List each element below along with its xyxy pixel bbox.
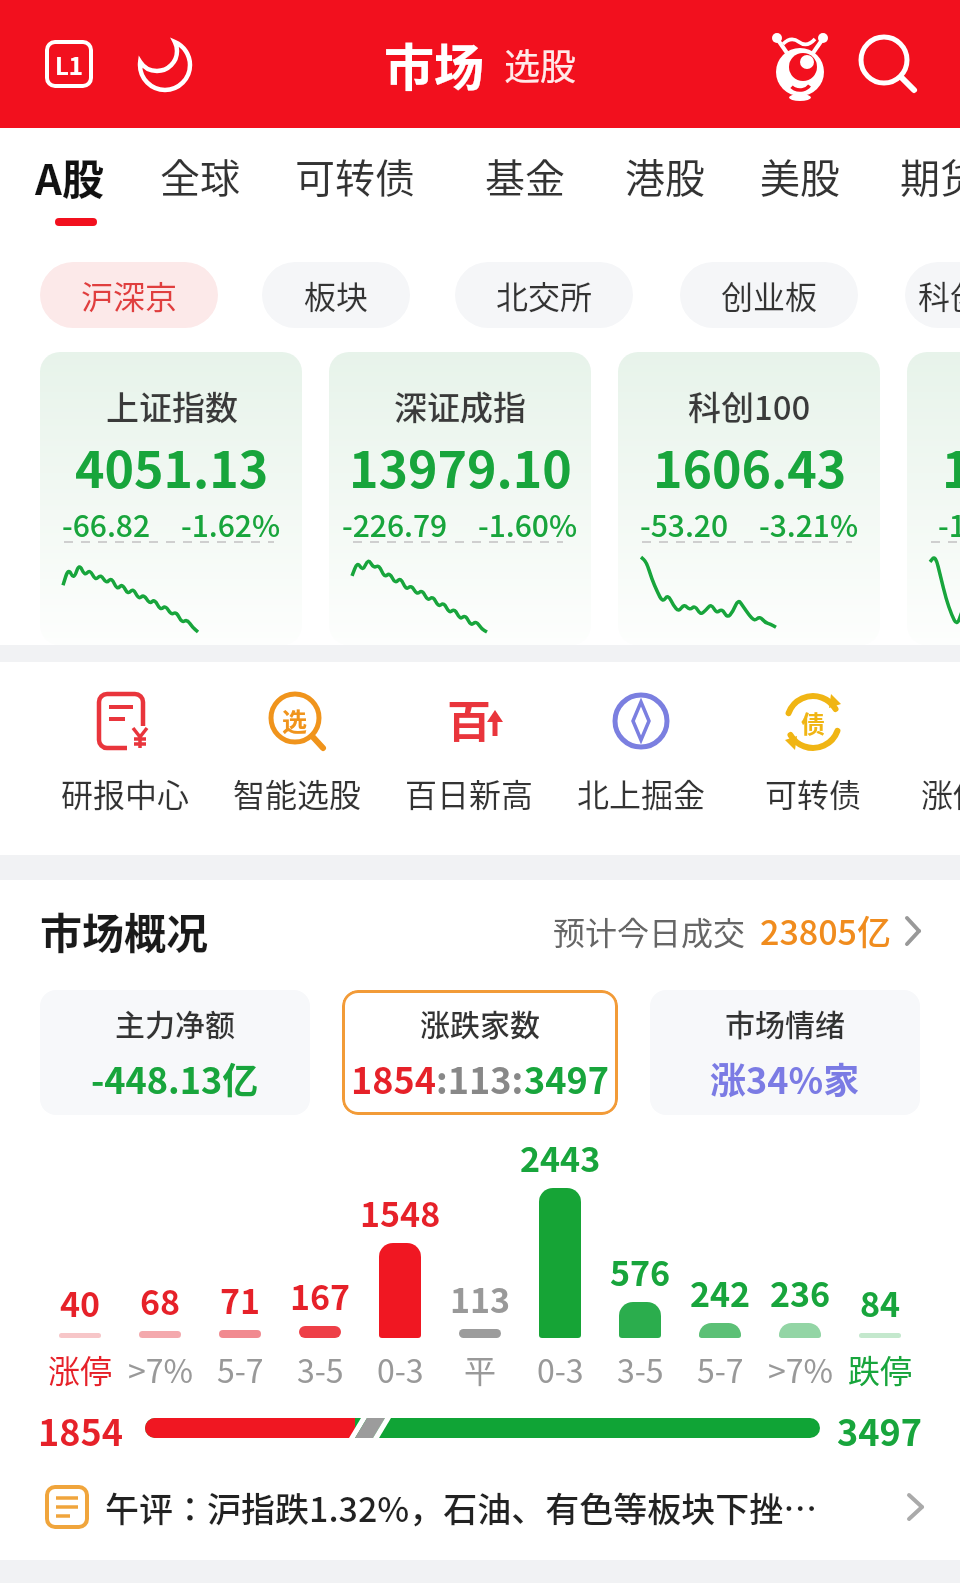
staticText: 上证指数: [106, 382, 238, 430]
staticText: 涨34%家: [710, 1052, 860, 1104]
staticText: 板块: [304, 272, 369, 318]
button[interactable]: 选: [211, 662, 383, 855]
staticText: 科创板: [918, 272, 960, 318]
button[interactable]: 午评：沪指跌1.32%，石油、有色等板块下挫…: [45, 1462, 930, 1552]
staticText: -3.21%: [759, 502, 859, 545]
button[interactable]: 沪深京: [40, 262, 218, 328]
staticText: 深证成指: [394, 382, 526, 430]
staticText: 债: [801, 705, 825, 740]
staticText: 5-7: [217, 1346, 264, 1392]
button[interactable]: [765, 28, 835, 98]
button[interactable]: 基金: [485, 128, 565, 224]
staticText: >7%: [128, 1346, 193, 1392]
button[interactable]: [138, 36, 198, 96]
button[interactable]: A股: [35, 128, 104, 224]
button[interactable]: 涨停雷达: [899, 662, 960, 855]
staticText: 68: [140, 1276, 181, 1325]
staticText: 市场概况: [40, 900, 209, 961]
staticText: 预计今日成交: [553, 908, 746, 954]
staticText: 84: [860, 1278, 901, 1327]
staticText: 午评：沪指跌1.32%，石油、有色等板块下挫…: [105, 1483, 904, 1532]
button[interactable]: 市场: [384, 28, 484, 100]
staticText: 市场情绪: [725, 1001, 845, 1044]
staticText: 40: [60, 1278, 101, 1327]
staticText: 港股: [625, 147, 705, 205]
staticText: 0-3: [537, 1346, 584, 1392]
staticText: 可转债: [295, 147, 415, 205]
button[interactable]: 研报中心: [39, 662, 211, 855]
staticText: 北交所: [496, 272, 593, 318]
button[interactable]: 北上掘金: [555, 662, 727, 855]
staticText: 跌停: [848, 1346, 913, 1392]
staticText: 科创100: [688, 382, 811, 430]
staticText: 236: [770, 1268, 831, 1317]
staticText: 平: [464, 1346, 497, 1392]
staticText: 北上掘金: [577, 770, 706, 816]
button[interactable]: 市场情绪: [650, 990, 920, 1115]
button[interactable]: 创业板: [680, 262, 858, 328]
staticText: 基金: [485, 147, 565, 205]
staticText: 1854: [38, 1404, 123, 1452]
button[interactable]: [858, 32, 922, 96]
staticText: 3497: [524, 1052, 609, 1104]
staticText: 1606.43: [653, 430, 847, 502]
staticText: 可转债: [765, 770, 862, 816]
staticText: 智能选股: [233, 770, 362, 816]
staticText: -448.13亿: [91, 1052, 259, 1104]
staticText: 13979.10: [349, 430, 572, 502]
button[interactable]: 全球: [160, 128, 240, 224]
staticText: 主力净额: [115, 1001, 235, 1044]
staticText: 百日新高: [405, 770, 534, 816]
button[interactable]: 深证成指: [329, 352, 591, 645]
staticText: 涨跌家数: [420, 1001, 540, 1044]
staticText: -66.82: [62, 502, 151, 545]
staticText: 4051.13: [75, 430, 269, 502]
button[interactable]: 债: [727, 662, 899, 855]
staticText: 242: [690, 1268, 751, 1317]
staticText: 期货: [900, 147, 960, 205]
staticText: -226.79: [342, 502, 448, 545]
button[interactable]: 选股: [504, 38, 577, 90]
staticText: 5-7: [697, 1346, 744, 1392]
button[interactable]: 涨跌家数: [342, 990, 618, 1115]
button[interactable]: 科创板: [905, 262, 960, 328]
staticText: 美股: [760, 147, 840, 205]
staticText: 全球: [160, 147, 240, 205]
button[interactable]: 可转债: [295, 128, 415, 224]
staticText: L1: [55, 47, 84, 82]
staticText: 涨停: [48, 1346, 113, 1392]
staticText: 0-3: [377, 1346, 424, 1392]
staticText: A股: [35, 146, 104, 207]
button[interactable]: 科创100: [618, 352, 880, 645]
staticText: 167: [290, 1271, 351, 1320]
staticText: 1606.43: [942, 430, 960, 502]
button[interactable]: L1: [45, 40, 93, 88]
button[interactable]: 主力净额: [40, 990, 310, 1115]
staticText: -1.60%: [478, 502, 578, 545]
staticText: :113:: [436, 1052, 524, 1104]
staticText: 百: [447, 687, 491, 751]
button[interactable]: 港股: [625, 128, 705, 224]
button[interactable]: 上证指数: [40, 352, 302, 645]
staticText: 576: [610, 1247, 671, 1296]
staticText: 沪深京: [81, 272, 178, 318]
staticText: 71: [220, 1275, 261, 1324]
staticText: 涨停雷达: [921, 770, 960, 816]
staticText: -1.60: [938, 502, 960, 545]
staticText: -53.20: [640, 502, 729, 545]
staticText: 1854: [351, 1052, 436, 1104]
button[interactable]: 美股: [760, 128, 840, 224]
staticText: 3497: [837, 1404, 922, 1452]
staticText: 3-5: [297, 1346, 344, 1392]
staticText: >7%: [768, 1346, 833, 1392]
button[interactable]: 期货: [900, 128, 960, 224]
staticText: 研报中心: [61, 770, 190, 816]
button[interactable]: 板块: [262, 262, 410, 328]
staticText: 1548: [360, 1188, 440, 1237]
button[interactable]: 百: [383, 662, 555, 855]
staticText: 113: [450, 1274, 511, 1323]
staticText: -1.62%: [181, 502, 281, 545]
button[interactable]: 创业板指: [907, 352, 960, 645]
button[interactable]: 北交所: [455, 262, 633, 328]
staticText: 23805亿: [760, 906, 891, 955]
